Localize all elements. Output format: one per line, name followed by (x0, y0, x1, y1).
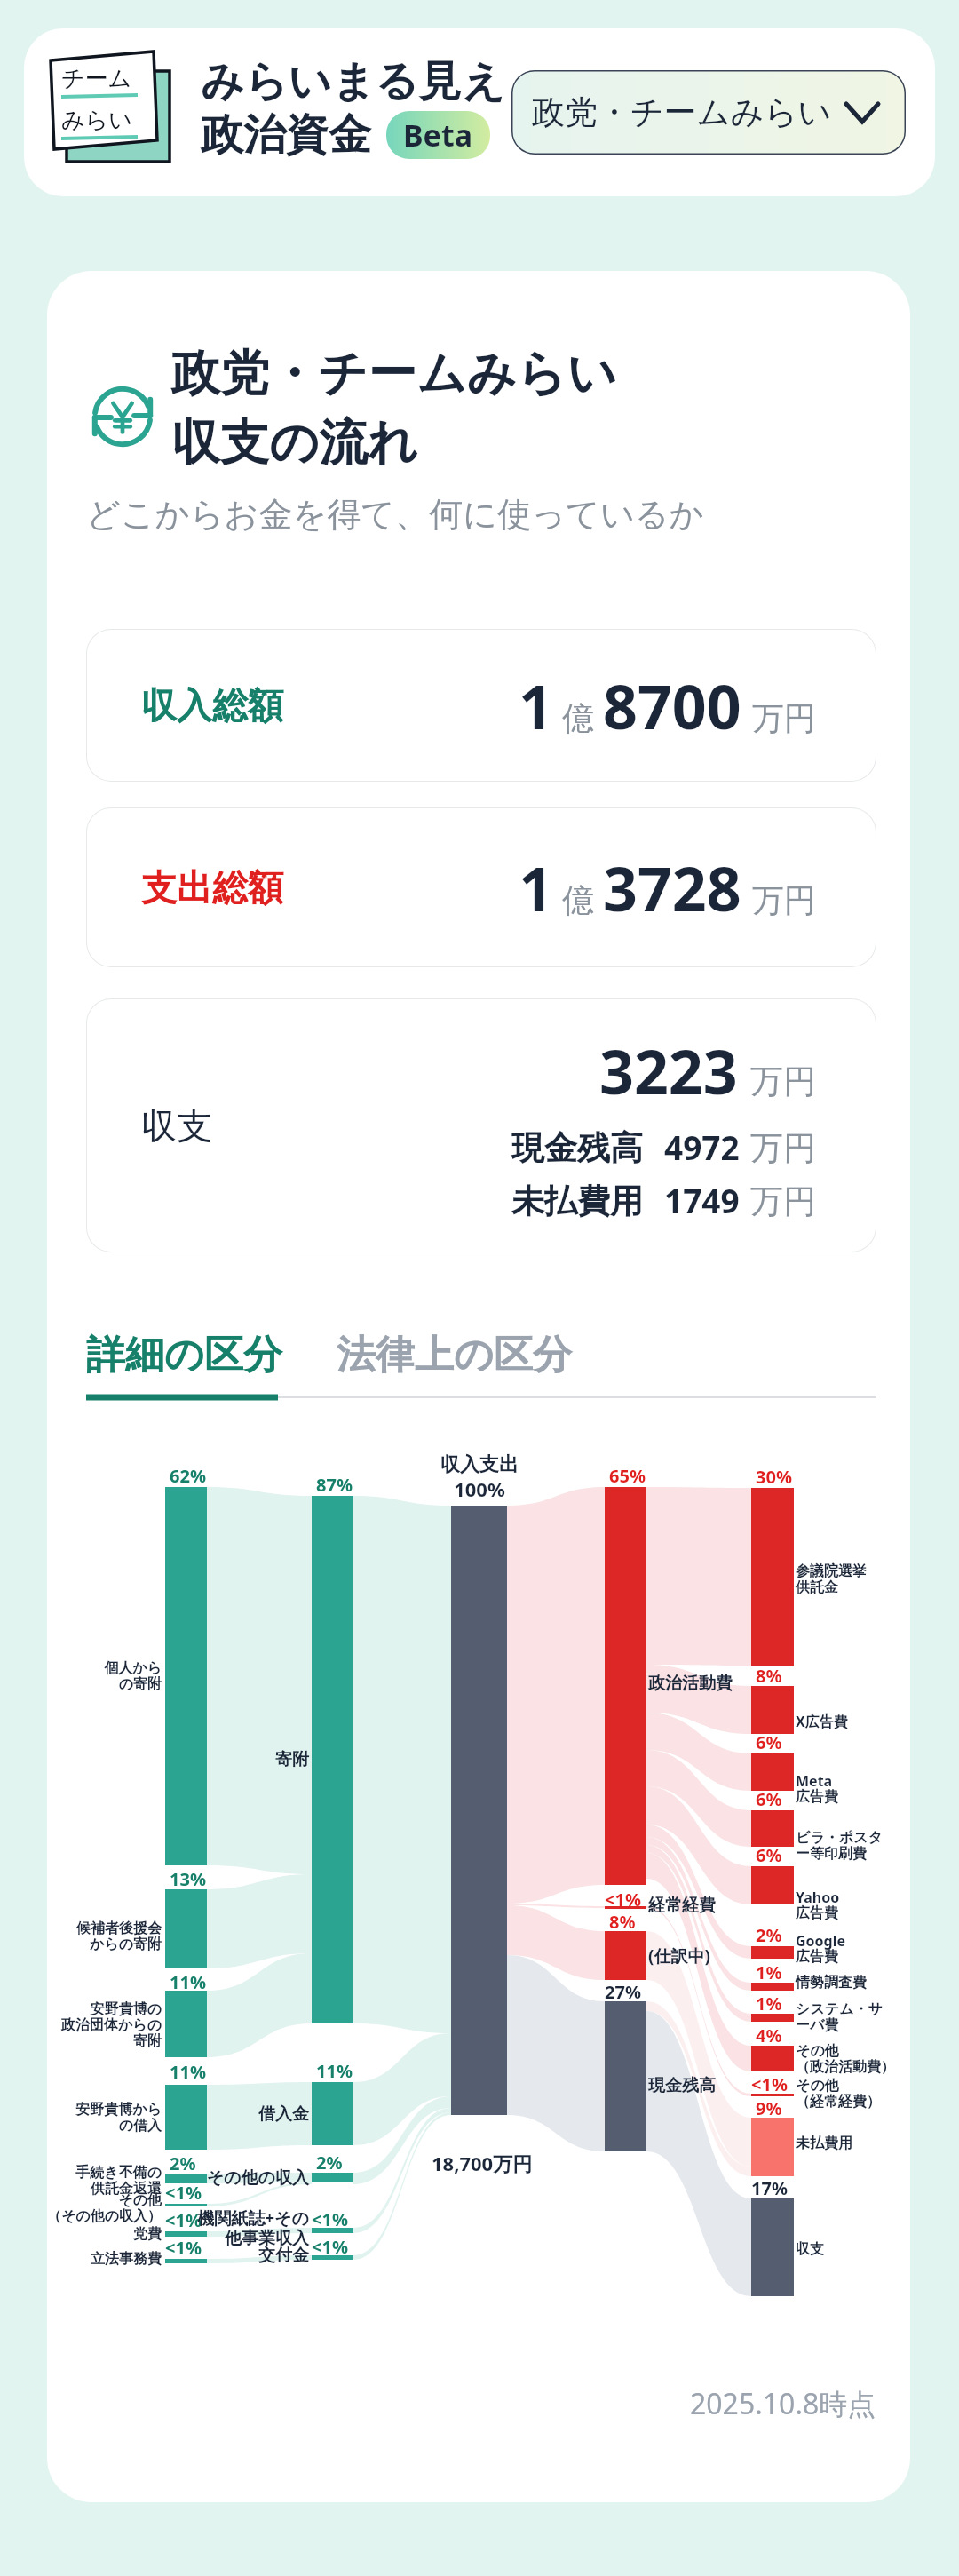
staticText: <1% (165, 2181, 202, 2205)
staticText: 現金残高 (648, 2075, 716, 2096)
staticText: 億 (562, 880, 594, 920)
staticText: 62% (170, 1464, 206, 1488)
button[interactable]: 収入総額 (86, 629, 876, 782)
staticText: どこからお金を得て、何に使っているか (86, 493, 704, 536)
staticText: 8% (609, 1910, 636, 1934)
staticText: 8700 (603, 664, 741, 747)
staticText: X広告費 (796, 1712, 848, 1731)
staticText: 万円 (752, 880, 816, 920)
staticText: 党費 (0, 2225, 162, 2243)
staticText: その他 （その他の収入） (0, 2191, 162, 2225)
staticText: <1% (165, 2236, 202, 2260)
staticText: システム・サ ーバ費 (796, 2000, 883, 2034)
staticText: 現金残高 (511, 1127, 643, 1169)
staticText: 政党・チームみらい (532, 91, 832, 133)
staticText: 億 (562, 698, 594, 738)
staticText: 18,700万円 (432, 2150, 533, 2176)
staticText: 政治活動費 (648, 1673, 733, 1694)
staticText: 2025.10.8時点 (690, 2384, 876, 2423)
staticText: <1% (165, 2208, 202, 2232)
other: 政党を選択 (846, 104, 878, 122)
staticText: 1749 (664, 1178, 740, 1222)
staticText: 3728 (603, 847, 741, 929)
staticText: 安野貴博から の借入 (0, 2101, 162, 2135)
staticText: 候補者後援会 からの寄附 (0, 1920, 162, 1953)
staticText: 8% (756, 1664, 782, 1688)
staticText: 1 (519, 664, 553, 747)
staticText: その他 （政治活動費） (796, 2042, 895, 2076)
staticText: 寄附 (0, 1749, 309, 1770)
staticText: 交付金 (0, 2245, 309, 2266)
staticText: 未払費用 (511, 1181, 643, 1222)
button[interactable]: 政党・チームみらい (511, 70, 906, 155)
staticText: 法律上の区分 (337, 1331, 573, 1379)
staticText: 6% (756, 1843, 782, 1867)
staticText: 収入支出 100% (346, 1452, 613, 1502)
staticText: 13% (170, 1867, 206, 1891)
staticText: みらい (61, 106, 132, 135)
staticText: 2% (316, 2151, 343, 2174)
staticText: 6% (756, 1730, 782, 1754)
staticText: その他の収入 (0, 2167, 309, 2189)
staticText: Meta 広告費 (796, 1771, 838, 1806)
staticText: 機関紙誌+その 他事業収入 (0, 2206, 309, 2249)
staticText: 3223 (599, 1030, 738, 1112)
staticText: 11% (316, 2059, 353, 2083)
staticText: (仕訳中) (648, 1944, 710, 1968)
staticText: 万円 (750, 1181, 816, 1222)
staticText: 立法事務費 (0, 2250, 162, 2268)
staticText: チーム (61, 64, 132, 93)
staticText: 30% (756, 1465, 792, 1489)
staticText: 万円 (752, 698, 816, 738)
staticText: 65% (609, 1464, 646, 1488)
staticText: 17% (751, 2176, 788, 2200)
staticText: <1% (312, 2207, 348, 2231)
staticText: 1 (519, 847, 553, 929)
button[interactable]: 法律上の区分 (337, 1324, 573, 1395)
staticText: 収支 (141, 1103, 212, 1148)
staticText: 手続き不備の 供託金返還 (0, 2164, 162, 2198)
staticText: 2% (170, 2151, 196, 2175)
staticText: その他 （経常経費） (796, 2077, 881, 2111)
staticText: Google 広告費 (796, 1931, 846, 1966)
staticText: 経常経費 (648, 1895, 716, 1916)
staticText: 借入金 (0, 2103, 309, 2125)
staticText: 個人から の寄附 (0, 1659, 162, 1693)
staticText: Beta (403, 115, 473, 155)
staticText: <1% (751, 2072, 788, 2096)
staticText: Yahoo 広告費 (796, 1888, 840, 1922)
staticText: みらいまる見え (201, 55, 505, 108)
staticText: 1% (756, 1960, 782, 1984)
staticText: 9% (756, 2096, 782, 2120)
staticText: 参議院選挙 供託金 (796, 1562, 867, 1596)
staticText: 政党・チームみらい (171, 343, 617, 404)
button[interactable]: 収支 (86, 998, 876, 1252)
staticText: 4972 (664, 1125, 740, 1169)
staticText: 1% (756, 1992, 782, 2015)
staticText: 11% (170, 2060, 206, 2084)
staticText: ビラ・ポスタ ー等印刷費 (796, 1829, 883, 1863)
staticText: 4% (756, 2023, 782, 2047)
staticText: 6% (756, 1787, 782, 1811)
staticText: 詳細の区分 (86, 1331, 283, 1379)
button[interactable]: 詳細の区分 (86, 1324, 283, 1395)
staticText: 収支 (796, 2240, 824, 2258)
staticText: 11% (170, 1970, 206, 1994)
staticText: 2% (756, 1923, 782, 1947)
staticText: 収入総額 (141, 683, 283, 727)
staticText: <1% (605, 1888, 641, 1912)
staticText: 収支の流れ (171, 412, 418, 473)
staticText: 未払費用 (796, 2135, 852, 2152)
staticText: 万円 (750, 1061, 816, 1102)
button[interactable]: 支出総額 (86, 807, 876, 967)
staticText: 支出総額 (141, 865, 283, 910)
staticText: 情勢調査費 (796, 1974, 867, 1992)
staticText: 27% (605, 1980, 641, 2004)
staticText: <1% (312, 2235, 348, 2259)
staticText: 万円 (750, 1127, 816, 1169)
staticText: 政治資金 (201, 108, 371, 162)
staticText: 87% (316, 1473, 353, 1497)
staticText: 安野貴博の 政治団体からの 寄附 (0, 2000, 162, 2050)
